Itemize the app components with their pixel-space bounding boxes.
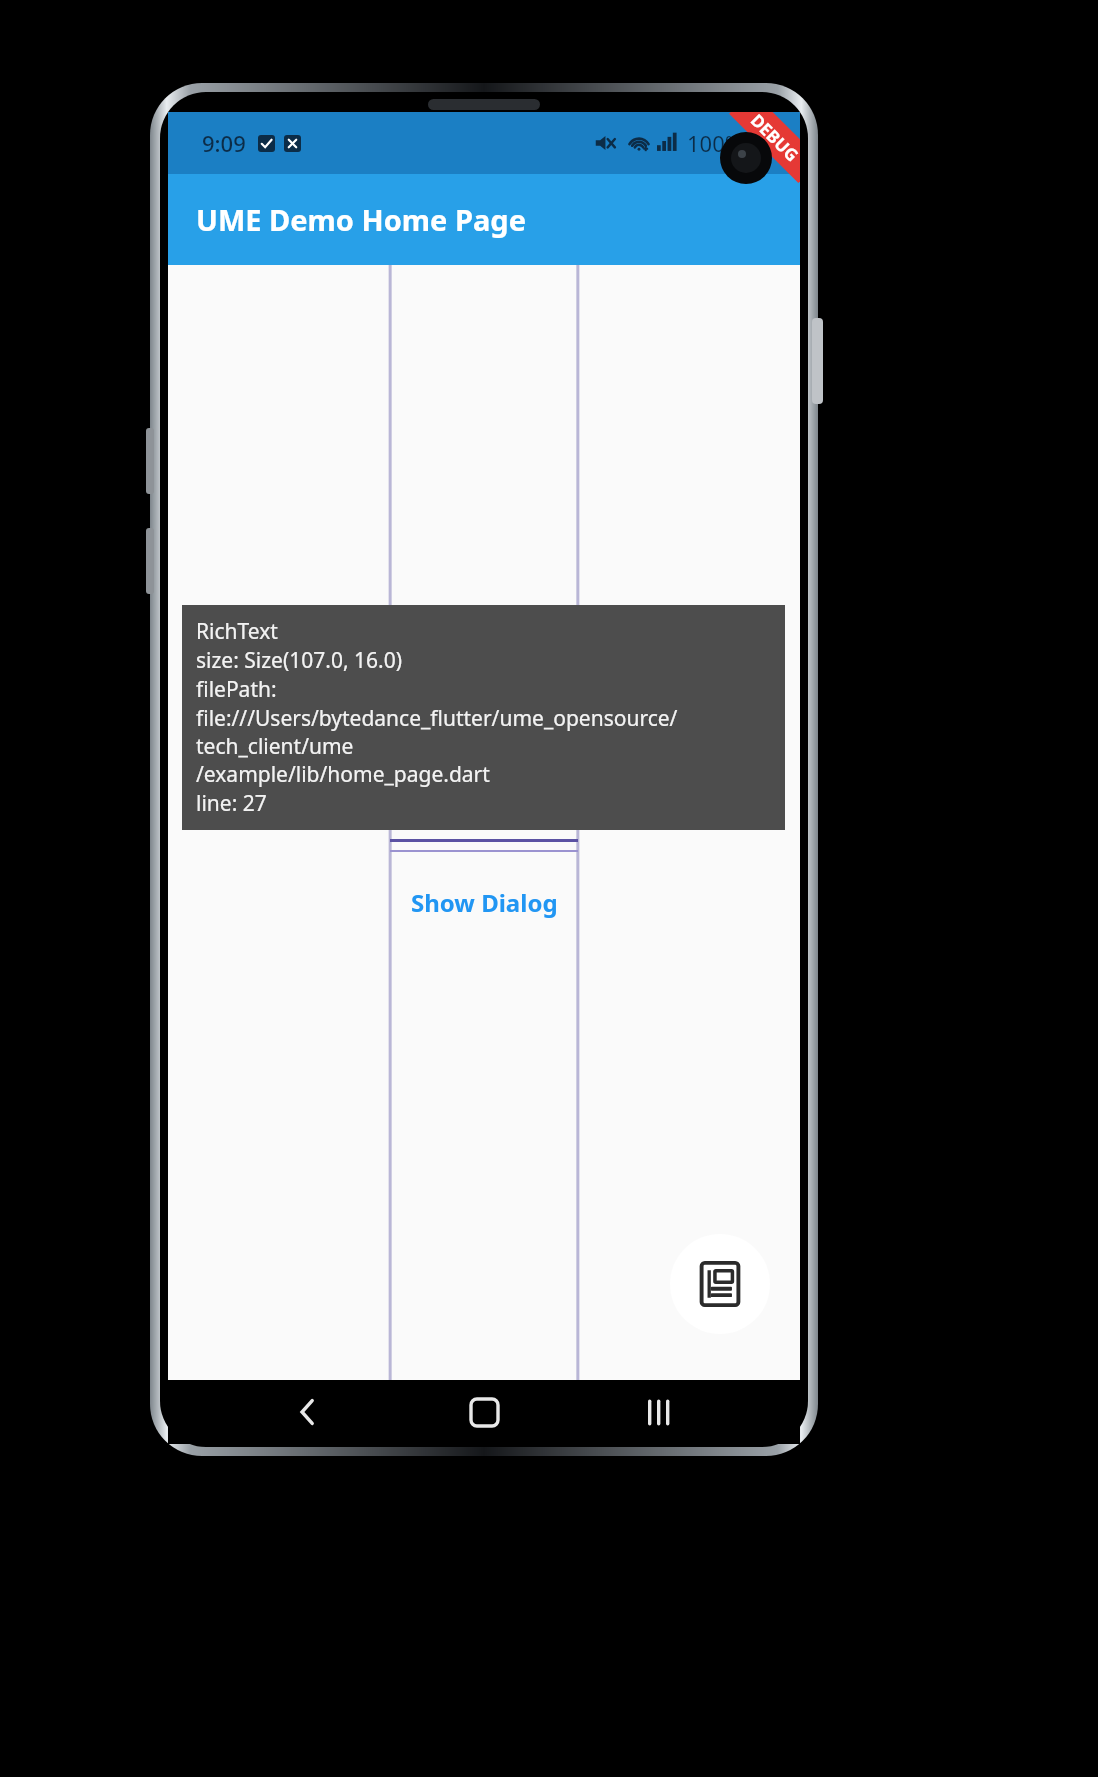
staticText: line: 27	[196, 789, 267, 818]
staticText: Show Dialog	[411, 886, 558, 919]
button[interactable]: Home	[448, 1380, 520, 1444]
staticText: /example/lib/home_page.dart	[196, 760, 490, 789]
button[interactable]: Back	[272, 1380, 344, 1444]
staticText: size: Size(107.0, 16.0)	[196, 646, 402, 675]
staticText: Push Detail Page	[393, 786, 575, 822]
staticText: file:///Users/bytedance_flutter/ume_open…	[196, 704, 775, 760]
button[interactable]: Push Detail Page	[393, 786, 575, 822]
button[interactable]: Recent apps	[624, 1380, 696, 1444]
button[interactable]: Show Dialog	[397, 880, 572, 925]
staticText: DEBUG	[746, 112, 800, 167]
staticText: 9:09	[202, 128, 246, 158]
staticText: UME Demo Home Page	[196, 200, 526, 239]
staticText: 100%	[687, 128, 744, 158]
button[interactable]: Open inspector panel	[670, 1234, 770, 1334]
staticText: filePath:	[196, 675, 277, 704]
staticText: RichText	[196, 617, 278, 646]
